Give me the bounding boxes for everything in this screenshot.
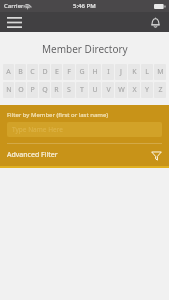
button[interactable]: M: [154, 64, 166, 80]
staticText: M: [157, 67, 164, 77]
staticText: K: [132, 67, 137, 77]
staticText: I: [107, 67, 110, 77]
button[interactable]: C: [27, 64, 38, 80]
button[interactable]: W: [115, 82, 127, 98]
button[interactable]: J: [115, 64, 127, 80]
button[interactable]: N: [3, 82, 14, 98]
staticText: L: [145, 67, 149, 77]
staticText: Y: [145, 85, 149, 95]
staticText: X: [132, 85, 137, 95]
button[interactable]: Advanced Filter: [7, 144, 162, 166]
staticText: A: [6, 67, 11, 77]
staticText: Carrier: [4, 2, 24, 10]
button[interactable]: Type Name Here: [7, 122, 162, 137]
staticText: H: [92, 67, 98, 77]
staticText: G: [79, 67, 85, 77]
button[interactable]: K: [128, 64, 140, 80]
button[interactable]: H: [89, 64, 101, 80]
button[interactable]: B: [15, 64, 26, 80]
staticText: Advanced Filter: [7, 150, 58, 160]
button[interactable]: F: [63, 64, 75, 80]
button[interactable]: U: [89, 82, 101, 98]
button[interactable]: E: [51, 64, 62, 80]
button[interactable]: T: [76, 82, 88, 98]
button[interactable]: I: [102, 64, 114, 80]
staticText: B: [18, 67, 23, 77]
button[interactable]: D: [39, 64, 50, 80]
button[interactable]: Y: [141, 82, 153, 98]
staticText: Q: [42, 85, 48, 95]
button[interactable]: Menu: [4, 12, 24, 32]
staticText: Filter by Member (first or last name): [7, 111, 109, 119]
staticText: F: [67, 67, 71, 77]
button[interactable]: A: [3, 64, 14, 80]
button[interactable]: S: [63, 82, 75, 98]
staticText: W: [118, 85, 125, 95]
staticText: S: [67, 85, 71, 95]
staticText: Type Name Here: [12, 125, 63, 134]
button[interactable]: O: [15, 82, 26, 98]
button[interactable]: L: [141, 64, 153, 80]
staticText: 5:46 PM: [73, 2, 96, 10]
staticText: V: [106, 85, 111, 95]
staticText: E: [55, 67, 59, 77]
button[interactable]: Q: [39, 82, 50, 98]
staticText: J: [120, 67, 122, 77]
button[interactable]: V: [102, 82, 114, 98]
staticText: P: [30, 85, 35, 95]
button[interactable]: G: [76, 64, 88, 80]
staticText: Member Directory: [42, 42, 128, 56]
staticText: C: [30, 67, 35, 77]
staticText: Z: [158, 85, 163, 95]
staticText: R: [54, 85, 59, 95]
staticText: U: [92, 85, 98, 95]
staticText: O: [18, 85, 24, 95]
button[interactable]: R: [51, 82, 62, 98]
button[interactable]: X: [128, 82, 140, 98]
button[interactable]: P: [27, 82, 38, 98]
staticText: D: [42, 67, 48, 77]
staticText: T: [80, 85, 84, 95]
button[interactable]: Z: [154, 82, 166, 98]
button[interactable]: Notifications: [145, 12, 165, 32]
staticText: N: [6, 85, 12, 95]
